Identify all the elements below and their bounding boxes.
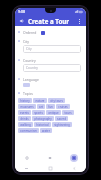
button[interactable]: sports <box>32 110 45 115</box>
button[interactable]: tours <box>62 110 74 115</box>
button[interactable]: art <box>37 104 45 109</box>
staticText: water <box>42 129 50 133</box>
staticText: art <box>39 105 43 109</box>
button[interactable]: drinks <box>18 116 31 121</box>
staticText: museums <box>20 105 34 109</box>
staticText: Topics <box>23 91 33 96</box>
button[interactable]: photography <box>32 116 54 121</box>
button[interactable]: Create <box>70 154 78 162</box>
button[interactable]: City <box>23 45 81 53</box>
staticText: Ordered <box>23 30 37 35</box>
staticText: sacred <box>57 117 66 121</box>
staticText: walking <box>20 123 31 127</box>
staticText: Create a Tour <box>28 17 70 25</box>
staticText: Country <box>26 66 38 70</box>
staticText: Language <box>23 77 39 82</box>
button[interactable]: Ordered checkbox <box>41 31 45 35</box>
button[interactable]: fun <box>46 104 55 109</box>
staticText: photography <box>34 117 52 121</box>
button[interactable]: nature <box>33 98 47 103</box>
staticText: events <box>20 111 29 115</box>
button[interactable]: Recents <box>15 164 38 172</box>
button[interactable]: sightseeing <box>52 122 72 127</box>
button[interactable]: Tours <box>38 151 62 164</box>
staticText: communism <box>20 129 37 133</box>
button[interactable]: city tours <box>48 98 65 103</box>
staticText: history <box>20 99 30 103</box>
button[interactable]: Back <box>18 17 26 25</box>
button[interactable]: Home <box>15 151 38 164</box>
staticText: 9:08 <box>18 9 25 14</box>
button[interactable]: Language <box>23 83 30 87</box>
staticText: City <box>23 39 29 44</box>
staticText: tours <box>64 111 72 115</box>
button[interactable]: communism <box>18 128 39 133</box>
button[interactable]: sacred <box>55 116 68 121</box>
button[interactable]: museums <box>18 104 36 109</box>
staticText: city tours <box>50 99 63 103</box>
button[interactable]: antique <box>46 110 61 115</box>
staticText: historical <box>36 123 49 127</box>
staticText: City <box>26 47 32 51</box>
staticText: antique <box>48 111 59 115</box>
button[interactable]: history <box>18 98 32 103</box>
staticText: sports <box>34 111 43 115</box>
button[interactable]: historical <box>34 122 51 127</box>
staticText: Country <box>23 58 36 63</box>
staticText: fun <box>48 105 53 109</box>
button[interactable]: Home <box>38 164 62 172</box>
staticText: sightseeing <box>54 123 70 127</box>
button[interactable]: More options <box>75 17 83 25</box>
staticText: drinks <box>20 117 29 121</box>
button[interactable]: events <box>18 110 31 115</box>
button[interactable]: water <box>40 128 52 133</box>
button[interactable]: walking <box>18 122 33 127</box>
staticText: nature <box>35 99 45 103</box>
button[interactable]: Country <box>23 64 81 72</box>
staticText: cruises <box>58 105 68 109</box>
button[interactable]: Back <box>62 164 86 172</box>
button[interactable]: cruises <box>56 104 70 109</box>
